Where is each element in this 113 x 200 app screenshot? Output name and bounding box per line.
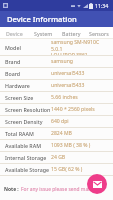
- button[interactable]: Screen Resolution: [0, 104, 113, 116]
- button[interactable]: Send mail: [87, 174, 107, 194]
- staticText: samsung: [51, 58, 73, 65]
- staticText: 24 GB: [51, 154, 66, 161]
- staticText: Available RAM: [5, 142, 41, 149]
- staticText: Hardware: [5, 82, 30, 89]
- button[interactable]: Sensors: [85, 27, 113, 39]
- staticText: Available Storage: [5, 166, 49, 173]
- staticText: Battery: [62, 30, 81, 37]
- staticText: Sensors: [89, 30, 109, 37]
- staticText: 2824 MB: [51, 130, 72, 137]
- button[interactable]: System: [29, 27, 57, 39]
- staticText: Total RAAM: [5, 130, 34, 137]
- staticText: 5.66 inches: [51, 94, 78, 101]
- staticText: For any issue please send mail: [21, 186, 91, 193]
- staticText: universal5433: [51, 82, 85, 89]
- staticText: 11:34: [95, 2, 109, 9]
- staticText: Internal Storage: [5, 154, 47, 161]
- staticText: universal5433: [51, 70, 85, 77]
- staticText: 1440 * 2560 pixels: [51, 106, 95, 113]
- staticText: Board: [5, 70, 21, 77]
- button[interactable]: Internal Storage: [0, 152, 113, 164]
- button[interactable]: Brand: [0, 56, 113, 68]
- button[interactable]: Model: [0, 39, 113, 56]
- staticText: Note :: [4, 186, 19, 193]
- staticText: System: [34, 30, 53, 37]
- staticText: Brand: [5, 58, 21, 65]
- staticText: Screen Size: [5, 94, 34, 101]
- staticText: 1093 MB ( 38 % ): [51, 142, 91, 149]
- staticText: 15 GB( 62 % ): [51, 166, 83, 173]
- button[interactable]: Screen Density: [0, 116, 113, 128]
- staticText: Screen Density: [5, 118, 43, 125]
- button[interactable]: Screen Size: [0, 92, 113, 104]
- button[interactable]: Board: [0, 68, 113, 80]
- staticText: Model: [5, 44, 21, 51]
- staticText: samsung SM-N910C 5.0.1 LOLLIPOP 3861: [51, 39, 108, 55]
- button[interactable]: Available Storage: [0, 164, 113, 176]
- button[interactable]: Total RAAM: [0, 128, 113, 140]
- staticText: Screen Resolution: [5, 106, 51, 113]
- staticText: 640 dpi: [51, 118, 69, 125]
- button[interactable]: Available RAM: [0, 140, 113, 152]
- button[interactable]: Hardware: [0, 80, 113, 92]
- button[interactable]: Device: [0, 27, 29, 39]
- staticText: Device: [6, 30, 23, 37]
- button[interactable]: Battery: [57, 27, 85, 39]
- staticText: Device Information: [7, 14, 77, 24]
